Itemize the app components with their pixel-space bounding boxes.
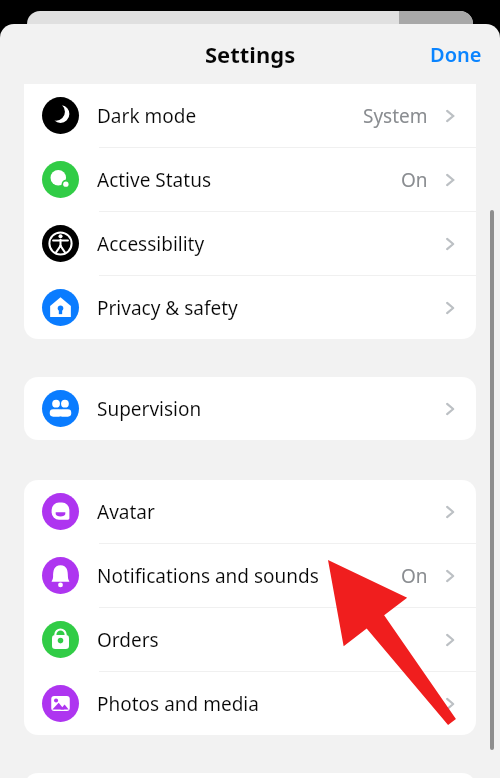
button[interactable]: Orders (24, 608, 476, 671)
staticText: Photos and media (97, 691, 442, 717)
staticText: Notifications and sounds (97, 563, 401, 589)
button[interactable]: Notifications and sounds (24, 544, 476, 607)
staticText: On (401, 167, 428, 193)
staticText: Done (430, 41, 482, 68)
button[interactable]: Dark mode (24, 84, 476, 147)
button[interactable]: Photos and media (24, 672, 476, 735)
staticText: Active Status (97, 167, 401, 193)
staticText: Supervision (97, 396, 442, 422)
button[interactable]: Privacy & safety (24, 276, 476, 339)
staticText: Dark mode (97, 103, 363, 129)
button[interactable]: Avatar (24, 480, 476, 543)
staticText: Settings (205, 39, 296, 69)
staticText: Privacy & safety (97, 295, 442, 321)
staticText: Orders (97, 627, 442, 653)
staticText: On (401, 563, 428, 589)
button[interactable]: Active Status (24, 148, 476, 211)
staticText: System (363, 103, 428, 129)
button[interactable]: Done (412, 33, 500, 76)
button[interactable]: Accessibility (24, 212, 476, 275)
staticText: Avatar (97, 499, 442, 525)
button[interactable]: Supervision (24, 377, 476, 440)
staticText: Accessibility (97, 231, 442, 257)
